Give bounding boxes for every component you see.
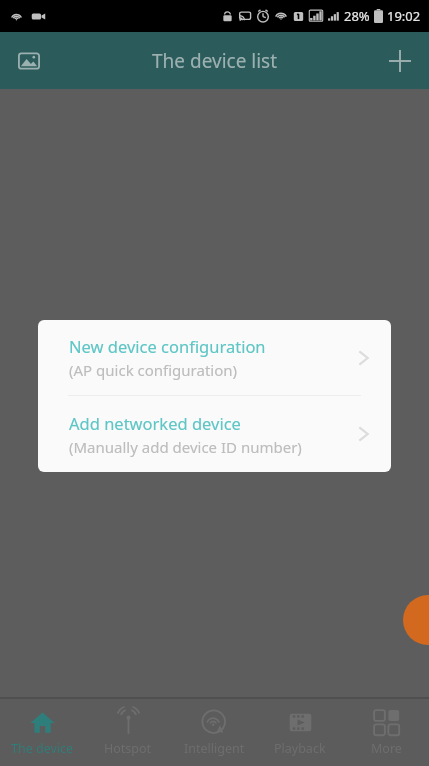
staticText: Hotspot (104, 740, 152, 757)
button[interactable]: Add (377, 38, 423, 84)
staticText: The device list (152, 48, 278, 74)
button[interactable]: More (343, 699, 429, 766)
staticText: Intelligent (184, 740, 245, 757)
button[interactable]: Gallery (6, 38, 52, 84)
button[interactable]: Intelligent (171, 699, 257, 766)
button[interactable]: New device configuration (38, 320, 391, 395)
staticText: The device (11, 740, 74, 757)
staticText: New device configuration (69, 335, 266, 357)
staticText: (AP quick configuration) (69, 360, 238, 380)
staticText: (Manually add device ID number) (69, 437, 302, 457)
button[interactable]: The device (0, 699, 85, 766)
button[interactable]: Add device (403, 595, 429, 645)
staticText: More (371, 740, 402, 757)
staticText: 28% (344, 7, 370, 25)
staticText: Playback (274, 740, 326, 757)
staticText: Add networked device (69, 412, 241, 434)
button[interactable]: Add networked device (38, 396, 391, 472)
staticText: 19:02 (387, 7, 421, 25)
button[interactable]: Playback (257, 699, 343, 766)
